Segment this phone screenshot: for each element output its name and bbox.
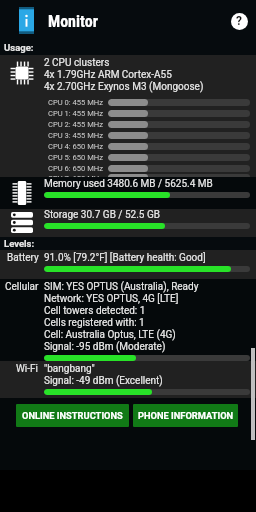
staticText: CPU 7: 650 MHz [48, 174, 104, 180]
staticText: ONLINE INSTRUCTIONS [22, 410, 123, 421]
staticText: PHONE INFORMATION [138, 410, 234, 421]
staticText: CPU 3: 455 MHz [48, 131, 104, 140]
staticText: Levels: [4, 238, 35, 249]
staticText: Monitor [48, 12, 98, 31]
staticText: CPU 5: 650 MHz [48, 153, 104, 162]
staticText: 2 CPU clusters [44, 57, 110, 69]
staticText: CPU 1: 455 MHz [48, 109, 104, 118]
staticText: CPU 0: 455 MHz [48, 98, 104, 107]
staticText: "bangbang" [44, 363, 95, 375]
staticText: 91.0% [79.2°F] [Battery health: Good] [44, 252, 206, 264]
staticText: Memory used 3480.6 MB / 5625.4 MB [44, 178, 213, 190]
staticText: 4x 2.70GHz Exynos M3 (Mongoose) [44, 81, 204, 93]
staticText: CPU 2: 455 MHz [48, 120, 104, 129]
staticText: CPU 6: 650 MHz [48, 164, 104, 173]
staticText: Cell: Australia Optus, LTE (4G) [44, 329, 176, 341]
staticText: SIM: YES OPTUS (Australia), Ready [44, 281, 199, 293]
staticText: Signal: -49 dBm (Excellent) [44, 375, 163, 387]
staticText: Wi-Fi [16, 363, 39, 375]
staticText: Battery [7, 252, 39, 264]
staticText: ? [236, 14, 242, 28]
staticText: Storage 30.7 GB / 52.5 GB [44, 209, 160, 221]
staticText: Cell towers detected: 1 [44, 305, 146, 317]
button[interactable]: ONLINE INSTRUCTIONS [16, 404, 129, 427]
staticText: Network: YES OPTUS, 4G [LTE] [44, 293, 179, 305]
staticText: Cellular [5, 281, 39, 293]
button[interactable]: Help [222, 4, 256, 38]
staticText: Signal: -95 dBm (Moderate) [44, 341, 166, 353]
button[interactable]: PHONE INFORMATION [133, 404, 238, 427]
staticText: 4x 1.79GHz ARM Cortex-A55 [44, 69, 172, 81]
staticText: Cells registered with: 1 [44, 317, 145, 329]
staticText: CPU 4: 650 MHz [48, 142, 104, 151]
staticText: Usage: [4, 42, 34, 53]
